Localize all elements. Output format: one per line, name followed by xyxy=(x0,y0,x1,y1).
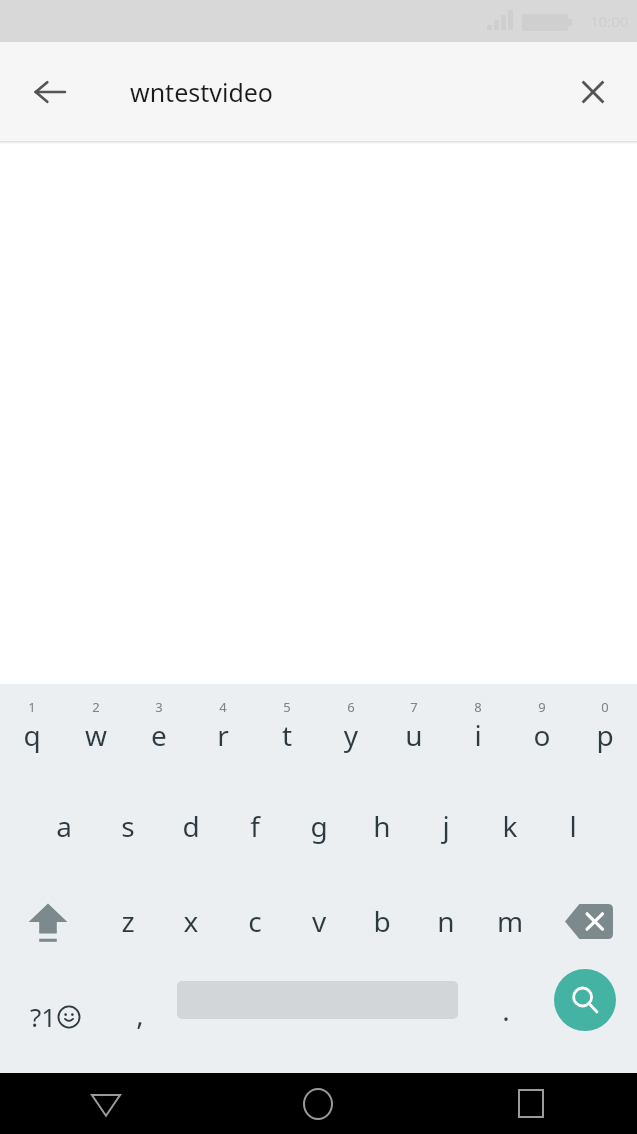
staticText: 3 xyxy=(127,698,191,716)
button[interactable]: n xyxy=(414,874,478,969)
button[interactable]: m xyxy=(478,874,542,969)
button[interactable]: 2 xyxy=(64,684,128,779)
button[interactable]: s xyxy=(96,779,160,874)
button[interactable]: Recent apps xyxy=(424,1073,637,1134)
button[interactable]: Backspace xyxy=(541,874,637,969)
staticText: w xyxy=(64,716,128,754)
staticText: f xyxy=(223,807,287,845)
staticText: u xyxy=(382,716,446,754)
staticText: l xyxy=(541,807,605,845)
staticText: v xyxy=(287,902,351,940)
button[interactable]: 8 xyxy=(446,684,510,779)
staticText: 9 xyxy=(510,698,574,716)
staticText: e xyxy=(127,716,191,754)
staticText: 4 xyxy=(191,698,255,716)
staticText: b xyxy=(350,902,414,940)
button[interactable]: Shift xyxy=(0,874,96,969)
button[interactable]: 4 xyxy=(191,684,255,779)
button[interactable]: j xyxy=(414,779,478,874)
button[interactable]: Back xyxy=(20,62,80,122)
staticText: 6 xyxy=(319,698,383,716)
button[interactable]: 0 xyxy=(573,684,637,779)
staticText: 0 xyxy=(573,698,637,716)
staticText: x xyxy=(159,902,223,940)
button[interactable]: 7 xyxy=(382,684,446,779)
staticText: p xyxy=(573,716,637,754)
staticText: 5 xyxy=(255,698,319,716)
staticText: n xyxy=(414,902,478,940)
button[interactable]: k xyxy=(478,779,542,874)
button[interactable]: Home xyxy=(212,1073,424,1134)
staticText: c xyxy=(223,902,287,940)
staticText: q xyxy=(0,716,64,754)
staticText: 7 xyxy=(382,698,446,716)
button[interactable]: , xyxy=(110,969,170,1063)
staticText: o xyxy=(510,716,574,754)
staticText: d xyxy=(159,807,223,845)
button[interactable]: h xyxy=(350,779,414,874)
button[interactable]: x xyxy=(159,874,223,969)
staticText: ?1 xyxy=(30,999,57,1034)
button[interactable]: 9 xyxy=(510,684,574,779)
staticText: a xyxy=(32,807,96,845)
button[interactable]: c xyxy=(223,874,287,969)
staticText: g xyxy=(287,807,351,845)
button[interactable]: d xyxy=(159,779,223,874)
staticText: t xyxy=(255,716,319,754)
staticText: m xyxy=(478,902,542,940)
staticText: k xyxy=(478,807,542,845)
staticText: h xyxy=(350,807,414,845)
button[interactable]: z xyxy=(96,874,160,969)
button[interactable]: Symbols and emoji xyxy=(0,969,110,1063)
staticText: 1 xyxy=(0,698,64,716)
button[interactable]: 6 xyxy=(319,684,383,779)
button[interactable]: Search xyxy=(554,969,616,1031)
button[interactable]: 3 xyxy=(127,684,191,779)
button[interactable]: Back xyxy=(0,1073,212,1134)
button[interactable]: g xyxy=(287,779,351,874)
button[interactable]: 5 xyxy=(255,684,319,779)
staticText: j xyxy=(414,807,478,845)
staticText: y xyxy=(319,716,383,754)
button[interactable]: Clear search xyxy=(563,62,623,122)
staticText: . xyxy=(478,991,534,1029)
button[interactable]: a xyxy=(32,779,96,874)
staticText: wntestvideo xyxy=(130,75,273,109)
staticText: 8 xyxy=(446,698,510,716)
button[interactable]: l xyxy=(541,779,605,874)
button[interactable]: f xyxy=(223,779,287,874)
staticText: 2 xyxy=(64,698,128,716)
button[interactable]: v xyxy=(287,874,351,969)
staticText: , xyxy=(110,995,170,1033)
staticText: r xyxy=(191,716,255,754)
button[interactable]: b xyxy=(350,874,414,969)
staticText: i xyxy=(446,716,510,754)
staticText: s xyxy=(96,807,160,845)
button[interactable]: . xyxy=(478,969,534,1063)
staticText: z xyxy=(96,902,160,940)
button[interactable]: 1 xyxy=(0,684,64,779)
